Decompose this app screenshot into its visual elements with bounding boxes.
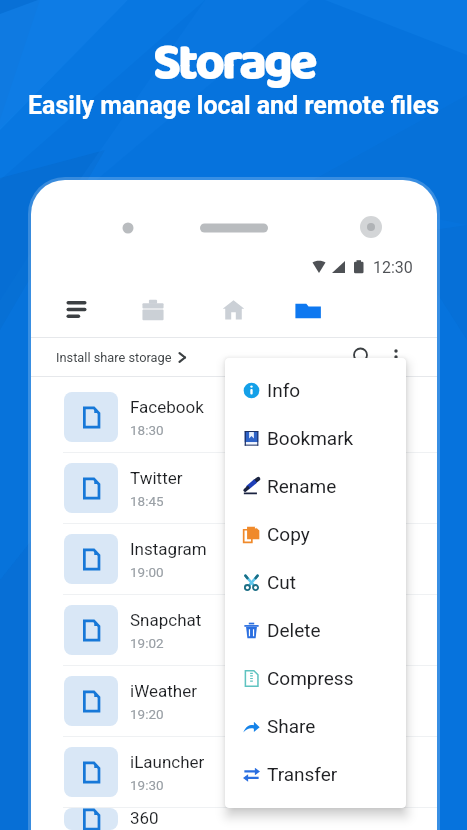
staticText: Transfer bbox=[267, 763, 338, 785]
staticText: Instagram bbox=[130, 539, 207, 559]
button[interactable]: Transfer bbox=[225, 750, 406, 798]
button[interactable]: Search bbox=[345, 340, 379, 374]
button[interactable]: Bookmark bbox=[225, 414, 406, 462]
button[interactable]: Delete bbox=[225, 606, 406, 654]
staticText: Facebook bbox=[130, 397, 204, 417]
staticText: Twitter bbox=[130, 468, 183, 488]
button[interactable]: Rename bbox=[225, 462, 406, 510]
button[interactable]: Install share storage bbox=[31, 338, 437, 376]
staticText: iWeather bbox=[130, 681, 197, 701]
button[interactable]: Facebook bbox=[31, 382, 437, 452]
staticText: Storage bbox=[153, 23, 315, 105]
button[interactable]: Share bbox=[225, 702, 406, 750]
button[interactable]: Snapchat bbox=[31, 595, 437, 665]
staticText: 18:30 bbox=[130, 422, 164, 438]
button[interactable]: Compress bbox=[225, 654, 406, 702]
button[interactable]: More options bbox=[379, 340, 413, 374]
button[interactable]: iLauncher bbox=[31, 737, 437, 807]
button[interactable]: Cut bbox=[225, 558, 406, 606]
button[interactable]: Info bbox=[225, 366, 406, 414]
button[interactable]: Copy bbox=[225, 510, 406, 558]
staticText: Compress bbox=[267, 667, 354, 689]
staticText: iLauncher bbox=[130, 752, 205, 772]
staticText: Install share storage bbox=[56, 350, 172, 365]
staticText: Info bbox=[267, 379, 301, 401]
button[interactable]: Files bbox=[284, 282, 332, 337]
button[interactable]: Instagram bbox=[31, 524, 437, 594]
staticText: Copy bbox=[267, 523, 310, 545]
button[interactable]: Twitter bbox=[31, 453, 437, 523]
staticText: Cut bbox=[267, 571, 297, 593]
button[interactable]: Toolbox bbox=[129, 282, 177, 337]
staticText: 360 bbox=[130, 808, 159, 828]
staticText: Rename bbox=[267, 475, 337, 497]
staticText: 12:30 bbox=[373, 258, 413, 277]
staticText: Bookmark bbox=[267, 427, 354, 449]
staticText: 18:45 bbox=[130, 493, 164, 509]
staticText: Easily manage local and remote files bbox=[28, 91, 439, 120]
button[interactable]: Sort bbox=[52, 282, 100, 337]
button[interactable]: iWeather bbox=[31, 666, 437, 736]
staticText: Snapchat bbox=[130, 610, 202, 630]
staticText: Delete bbox=[267, 619, 321, 641]
staticText: Share bbox=[267, 715, 316, 737]
button[interactable]: Home bbox=[210, 282, 258, 337]
staticText: 19:20 bbox=[130, 706, 164, 722]
staticText: 19:02 bbox=[130, 635, 164, 651]
staticText: 19:00 bbox=[130, 564, 164, 580]
staticText: 19:30 bbox=[130, 777, 164, 793]
button[interactable]: 360 bbox=[31, 808, 437, 830]
